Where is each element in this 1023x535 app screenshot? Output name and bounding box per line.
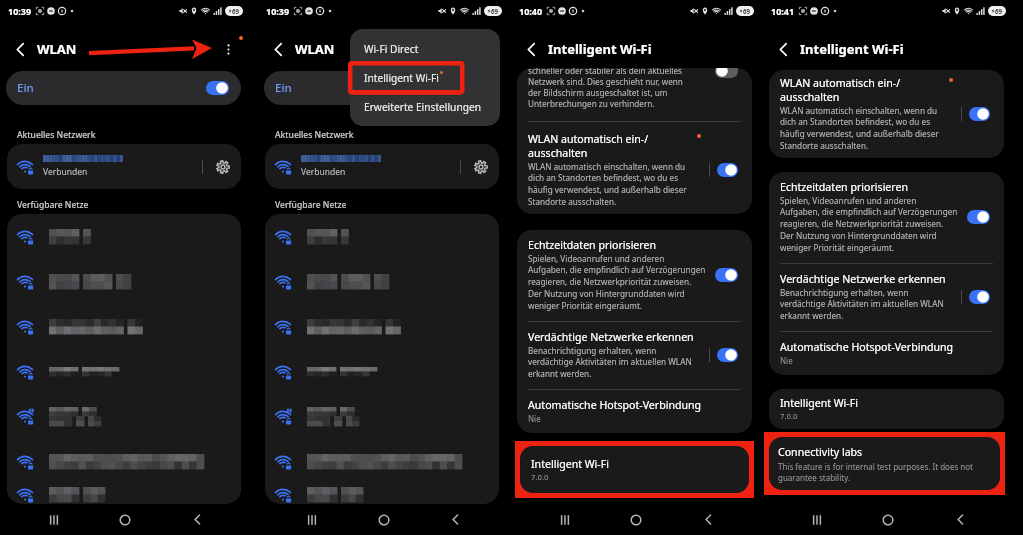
button[interactable]: Intelligent Wi-Fi [350, 63, 500, 92]
staticText: Verbunden [301, 166, 346, 178]
button[interactable]: On [717, 348, 738, 362]
button[interactable]: Recents [294, 504, 330, 535]
button[interactable]: Connectivity labs [769, 437, 1000, 490]
button[interactable]: Wi-Fi network [7, 484, 241, 504]
button[interactable]: Wi-Fi network [265, 214, 499, 259]
button[interactable]: Wi-Fi network [7, 304, 241, 349]
staticText: Echtzeitdaten priorisieren [528, 238, 657, 252]
button[interactable]: More options [217, 38, 239, 60]
staticText: 7.0.0 [780, 411, 798, 422]
button[interactable]: Off [715, 68, 738, 78]
staticText: Verfügbare Netze [17, 199, 89, 211]
button[interactable]: On [715, 268, 738, 282]
staticText: Aktuelles Netzwerk [17, 129, 96, 141]
staticText: 69 [995, 7, 1003, 15]
button[interactable]: Verdächtige Netzwerke erkennen [517, 322, 752, 389]
staticText: 7.0.0 [531, 472, 549, 483]
button[interactable]: Wi-Fi network [265, 439, 499, 484]
button[interactable]: Wi-Fi network [7, 394, 241, 439]
staticText: Benachrichtigung erhalten, wenn verdächt… [780, 287, 944, 322]
button[interactable]: Recents [547, 504, 583, 535]
button[interactable]: Wi-Fi network [7, 349, 241, 394]
staticText: Echtzeitdaten priorisieren [780, 180, 909, 194]
button[interactable]: Ein [264, 71, 499, 105]
button[interactable]: Back [179, 504, 215, 535]
button[interactable]: Back [690, 504, 726, 535]
button[interactable]: Home [107, 504, 143, 535]
button[interactable]: Wi-Fi network [265, 394, 499, 439]
staticText: Spielen, Videoanrufen und anderen Aufgab… [780, 195, 958, 254]
button[interactable]: Verdächtige Netzwerke erkennen [769, 264, 1004, 331]
staticText: 69 [491, 7, 499, 15]
staticText: Intelligent Wi-Fi [800, 40, 904, 58]
button[interactable]: Wi-Fi network [265, 349, 499, 394]
button[interactable]: Echtzeitdaten priorisieren [769, 172, 1004, 263]
button[interactable]: Automatische Hotspot-Verbindung [517, 390, 752, 433]
button[interactable]: Wi-Fi network [265, 304, 499, 349]
staticText: Intelligent Wi-Fi [531, 457, 609, 471]
staticText: WLAN automatisch einschalten, wenn du di… [528, 161, 687, 208]
button[interactable]: Recents [36, 504, 72, 535]
button[interactable]: Home [618, 504, 654, 535]
staticText: Automatische Hotspot-Verbindung [528, 398, 702, 412]
button[interactable]: On [969, 290, 990, 304]
staticText: Benachrichtigung erhalten, wenn verdächt… [528, 345, 692, 380]
staticText: Wi-Fi Direct [364, 42, 419, 56]
button[interactable]: On [967, 210, 990, 224]
staticText: This feature is for internal test purpos… [778, 461, 973, 483]
staticText: Intelligent Wi-Fi [548, 40, 652, 58]
button[interactable]: Network settings [471, 157, 490, 176]
button[interactable]: Back [10, 39, 30, 59]
button[interactable]: Back [521, 39, 541, 59]
button[interactable]: Intelligent Wi-Fi [769, 389, 1004, 429]
button[interactable]: Back [773, 39, 793, 59]
button[interactable]: Intelligent Wi-Fi [520, 446, 749, 493]
staticText: Intelligent Wi-Fi [780, 396, 858, 410]
button[interactable]: Wi-Fi network [7, 439, 241, 484]
staticText: Nie [528, 413, 541, 424]
staticText: 10:41 [771, 5, 795, 17]
button[interactable]: On [969, 107, 990, 121]
button[interactable]: Home [870, 504, 906, 535]
button[interactable]: Home [366, 504, 402, 535]
staticText: Aktuelles Netzwerk [275, 129, 354, 141]
button[interactable]: WLAN automatisch ein-/ ausschalten [517, 122, 752, 214]
staticText: 69 [743, 7, 751, 15]
staticText: WLAN automatisch einschalten, wenn du di… [780, 105, 939, 152]
staticText: Ein [17, 80, 34, 96]
button[interactable]: Automatische Hotspot-Verbindung [769, 332, 1004, 375]
staticText: schneller oder stabiler als dein aktuell… [528, 68, 683, 109]
button[interactable]: Ein [6, 71, 241, 105]
button[interactable]: Wi-Fi network [7, 259, 241, 304]
button[interactable]: Back [437, 504, 473, 535]
button[interactable]: On [206, 81, 229, 95]
staticText: 10:39 [266, 5, 290, 17]
button[interactable]: Wi-Fi network [7, 214, 241, 259]
staticText: Verbunden [43, 166, 88, 178]
button[interactable]: Echtzeitdaten priorisieren [517, 230, 752, 321]
button[interactable]: Recents [799, 504, 835, 535]
staticText: 10:40 [519, 5, 543, 17]
staticText: WLAN automatisch ein-/ ausschalten [780, 76, 901, 104]
button[interactable]: On [464, 81, 487, 95]
staticText: 10:39 [8, 5, 32, 17]
staticText: Ein [275, 80, 292, 96]
staticText: WLAN automatisch ein-/ ausschalten [528, 132, 649, 160]
staticText: Verfügbare Netze [275, 199, 347, 211]
button[interactable]: Back [942, 504, 978, 535]
button[interactable]: WLAN automatisch ein-/ ausschalten [769, 70, 1004, 158]
staticText: Automatische Hotspot-Verbindung [780, 340, 954, 354]
button[interactable]: On [717, 163, 738, 177]
button[interactable]: Wi-Fi network [265, 484, 499, 504]
staticText: Intelligent Wi-Fi [364, 71, 439, 85]
button[interactable]: Wi-Fi Direct [350, 34, 500, 63]
button[interactable]: Verbunden [265, 144, 499, 189]
button[interactable]: Network settings [213, 157, 232, 176]
staticText: Verdächtige Netzwerke erkennen [528, 330, 694, 344]
button[interactable]: Wi-Fi network [265, 259, 499, 304]
button[interactable]: Erweiterte Einstellungen [350, 92, 500, 121]
button[interactable]: Back [268, 39, 288, 59]
staticText: Nie [780, 355, 793, 366]
button[interactable]: Verbunden [7, 144, 241, 189]
